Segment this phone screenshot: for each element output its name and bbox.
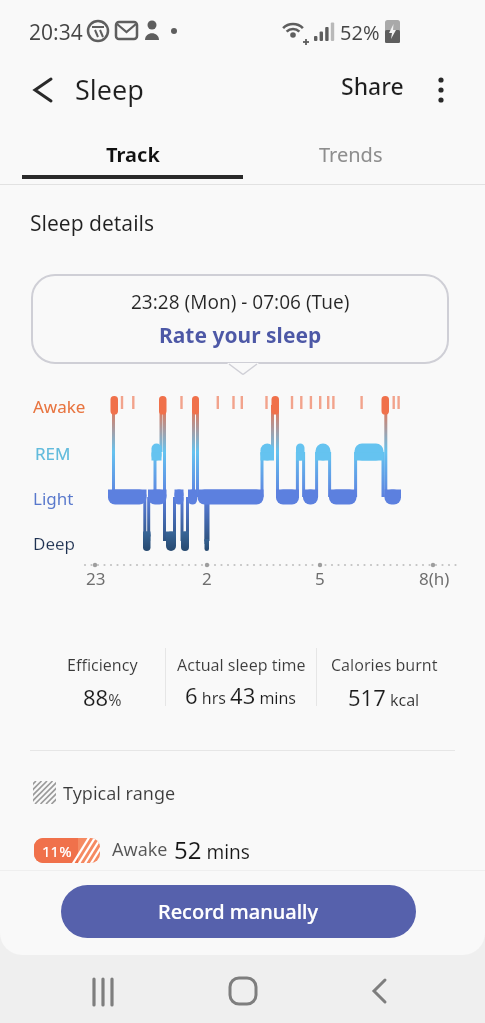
- staticText: 23:28 (Mon) - 07:06 (Tue): [131, 289, 350, 315]
- button[interactable]: 23:28 (Mon) - 07:06 (Tue): [31, 274, 449, 364]
- staticText: Sleep: [75, 71, 144, 108]
- staticText: 8(h): [419, 567, 450, 590]
- staticText: Awake: [33, 395, 86, 418]
- staticText: Actual sleep time: [177, 654, 306, 676]
- button[interactable]: Record manually: [61, 885, 416, 938]
- staticText: 2: [202, 567, 212, 590]
- staticText: Record manually: [158, 898, 319, 925]
- button[interactable]: [80, 968, 130, 1014]
- staticText: Calories burnt: [331, 654, 438, 676]
- staticText: Share: [341, 70, 404, 101]
- staticText: 5: [315, 567, 325, 590]
- staticText: 517 kcal: [348, 682, 420, 712]
- staticText: Awake: [112, 837, 168, 862]
- staticText: Rate your sleep: [159, 321, 322, 350]
- staticText: 6 hrs 43 mins: [185, 680, 297, 710]
- staticText: Deep: [33, 532, 76, 555]
- staticText: Typical range: [63, 781, 176, 806]
- button[interactable]: Trends: [243, 130, 459, 178]
- button[interactable]: Share: [341, 70, 404, 101]
- button[interactable]: [424, 68, 460, 112]
- button[interactable]: [20, 68, 64, 112]
- staticText: Sleep details: [30, 209, 155, 238]
- staticText: Trends: [319, 141, 383, 168]
- staticText: 23: [86, 567, 106, 590]
- staticText: 52 mins: [174, 833, 250, 866]
- staticText: REM: [35, 442, 71, 465]
- staticText: Light: [33, 487, 74, 510]
- button[interactable]: [218, 968, 268, 1014]
- staticText: Track: [106, 141, 160, 168]
- staticText: 88%: [83, 682, 122, 712]
- button[interactable]: [355, 968, 405, 1014]
- staticText: 11%: [42, 841, 72, 861]
- staticText: 52%: [340, 19, 380, 46]
- staticText: Efficiency: [67, 654, 138, 676]
- staticText: 20:34: [29, 18, 83, 47]
- button[interactable]: Track: [22, 130, 243, 178]
